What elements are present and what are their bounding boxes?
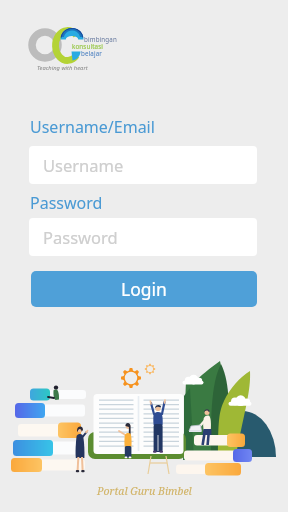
staticText: konsultasi	[72, 42, 104, 50]
staticText: Password	[30, 192, 103, 214]
staticText: Password	[43, 226, 118, 248]
button[interactable]: Username	[29, 146, 257, 184]
staticText: Username	[43, 154, 124, 176]
staticText: Portal Guru Bimbel	[97, 484, 192, 498]
staticText: bimbingan	[84, 35, 117, 43]
staticText: Username/Email	[30, 116, 155, 138]
staticText: belajar	[81, 49, 103, 57]
staticText: Teaching with heart	[37, 64, 88, 72]
button[interactable]: Login	[31, 271, 257, 307]
button[interactable]: Password	[29, 218, 257, 256]
staticText: Login	[121, 277, 167, 301]
